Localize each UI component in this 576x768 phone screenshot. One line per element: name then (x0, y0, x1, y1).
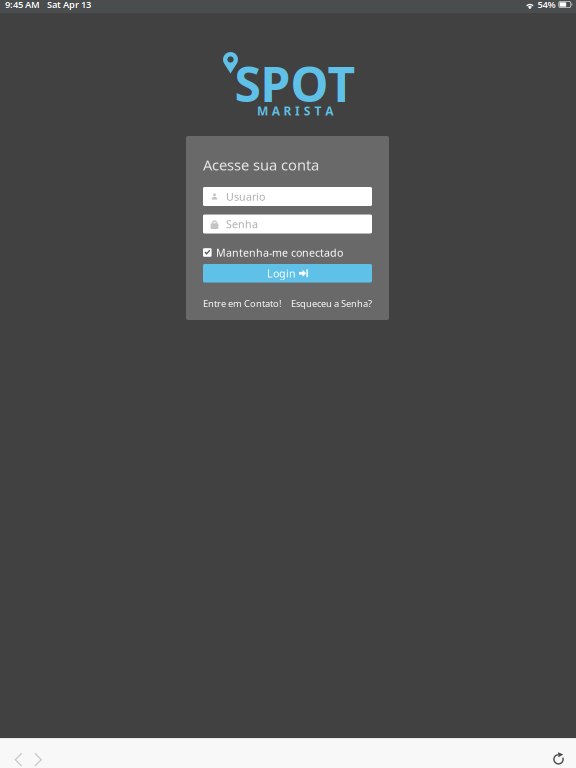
staticText: 9:45 AM (5, 0, 40, 11)
button[interactable]: Back (7, 745, 29, 768)
staticText: Esqueceu a Senha? (291, 297, 372, 310)
button[interactable]: Senha (203, 214, 372, 233)
staticText: Senha (226, 217, 258, 231)
staticText: Login (267, 266, 296, 280)
button[interactable]: Entre em Contato! (203, 297, 285, 310)
button[interactable]: Mantenha-me conectado (203, 246, 372, 259)
staticText: SPOT (234, 51, 355, 115)
staticText: Mantenha-me conectado (216, 245, 343, 260)
button[interactable]: Forward (27, 745, 49, 768)
staticText: Usuario (226, 189, 265, 204)
button[interactable]: Reload (545, 745, 572, 768)
staticText: Entre em Contato! (203, 297, 282, 310)
staticText: Acesse sua conta (203, 155, 319, 174)
staticText: Sat Apr 13 (47, 0, 91, 11)
button[interactable]: Usuario (203, 187, 372, 206)
button[interactable]: Esqueceu a Senha? (290, 297, 372, 310)
staticText: M A R I S T A (257, 103, 333, 119)
button[interactable]: Login (203, 264, 372, 282)
staticText: 54% (537, 0, 555, 11)
